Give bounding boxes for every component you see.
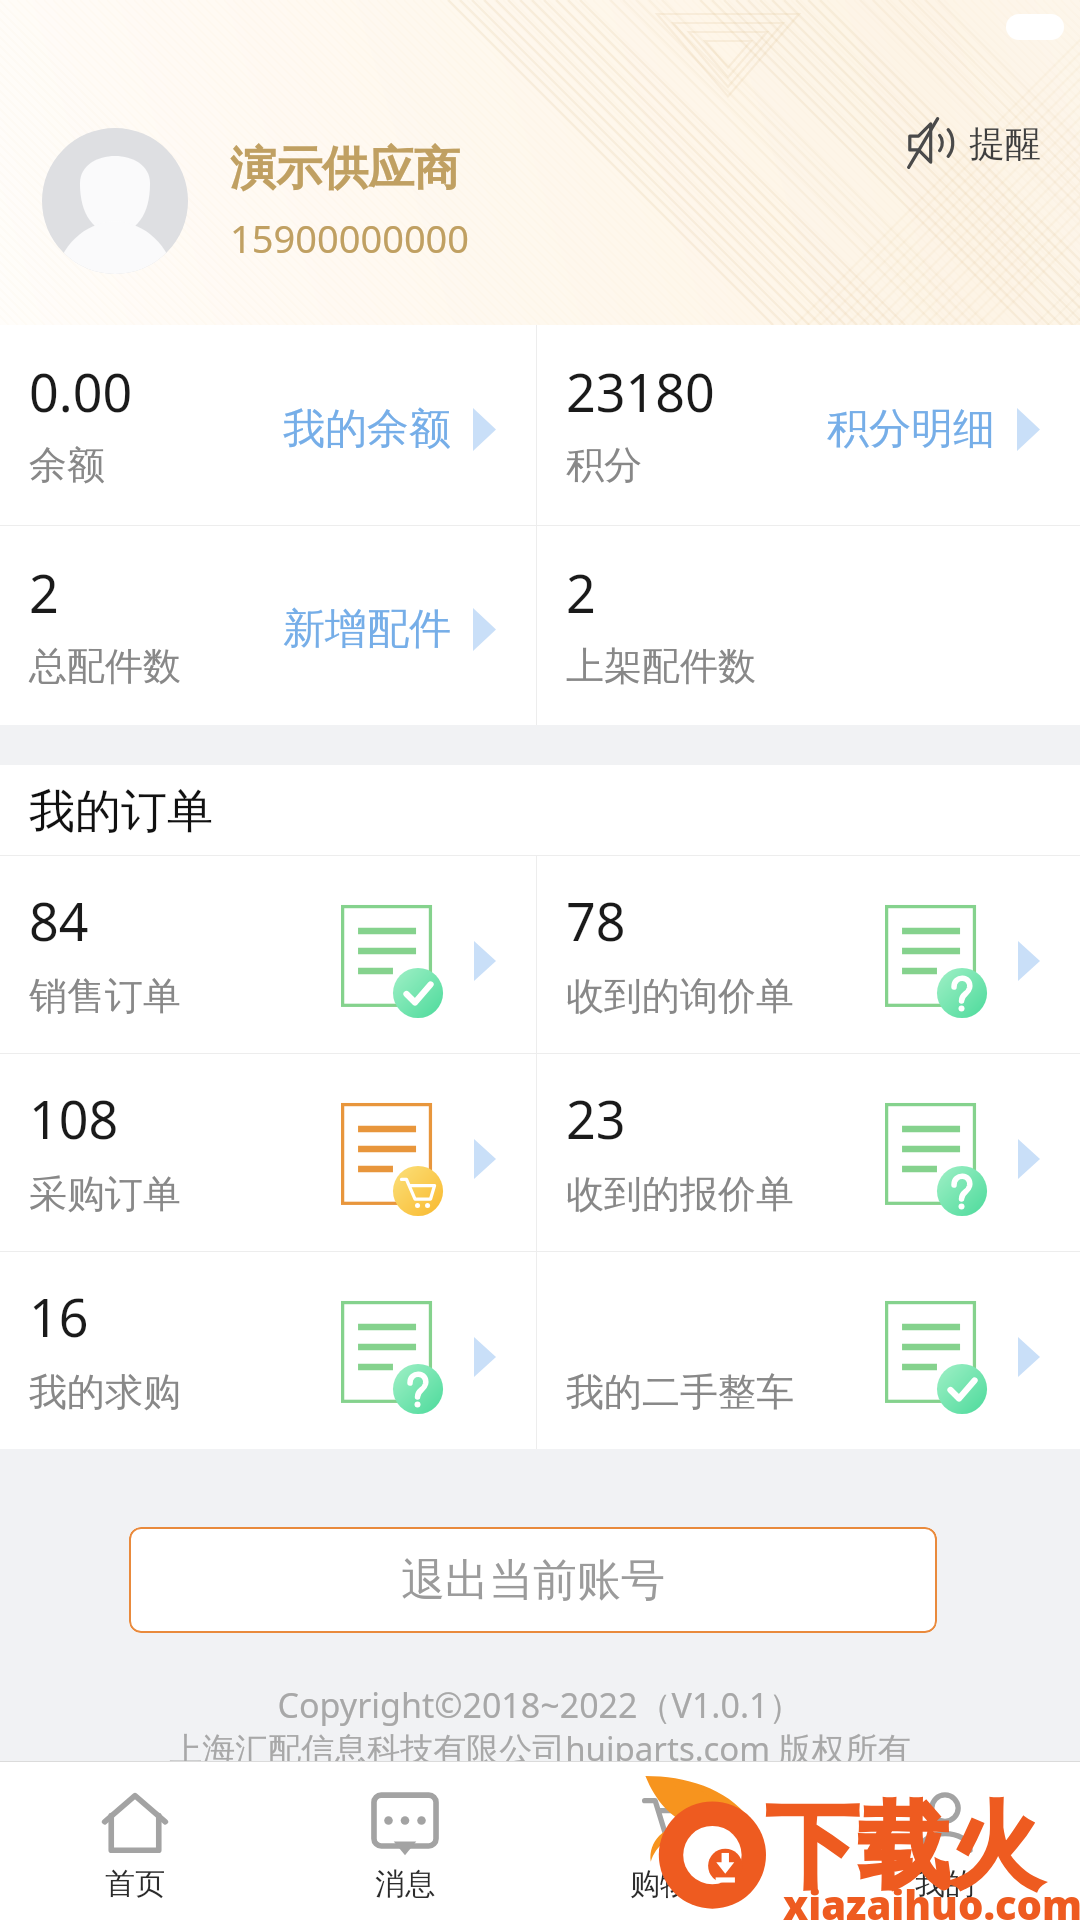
staticText: 0.00	[29, 356, 133, 427]
staticText: 积分	[566, 441, 642, 489]
staticText: 购物车	[630, 1865, 720, 1903]
staticText: 余额	[29, 441, 105, 489]
staticText: 演示供应商	[230, 140, 460, 198]
staticText: 我的订单	[29, 783, 213, 841]
button[interactable]: 108	[0, 1054, 536, 1251]
button[interactable]: 消息	[270, 1762, 540, 1920]
button[interactable]: 23180	[537, 325, 1080, 525]
button[interactable]: 23	[537, 1054, 1080, 1251]
staticText: 84	[29, 885, 89, 956]
button[interactable]: 首页	[0, 1762, 270, 1920]
staticText: 我的二手整车	[566, 1368, 794, 1416]
staticText: 收到的报价单	[566, 1170, 794, 1218]
staticText: 首页	[105, 1865, 165, 1903]
button[interactable]: 演示供应商	[230, 140, 470, 264]
staticText: 我的求购	[29, 1368, 181, 1416]
staticText: 108	[29, 1083, 119, 1154]
staticText: 2	[29, 557, 59, 628]
staticText: 下载火	[766, 1789, 1042, 1905]
staticText: 23	[566, 1083, 626, 1154]
staticText: 退出当前账号	[401, 1553, 665, 1608]
button[interactable]: 2	[0, 526, 536, 725]
button[interactable]: 提醒	[900, 110, 1045, 176]
button[interactable]: 84	[0, 856, 536, 1053]
staticText: 新增配件	[283, 603, 451, 656]
staticText: 总配件数	[29, 642, 181, 690]
staticText: 提醒	[969, 121, 1041, 166]
button[interactable]: 0.00	[0, 325, 536, 525]
staticText: 采购订单	[29, 1170, 181, 1218]
button[interactable]: 退出当前账号	[129, 1527, 937, 1633]
button[interactable]: 购物车	[540, 1762, 810, 1920]
button[interactable]: 我的	[810, 1762, 1080, 1920]
staticText: 15900000000	[230, 212, 470, 264]
staticText: 16	[29, 1281, 89, 1352]
staticText: 收到的询价单	[566, 972, 794, 1020]
staticText: Copyright©2018~2022（V1.0.1）	[0, 1682, 1080, 1728]
staticText: 销售订单	[29, 972, 181, 1020]
staticText: 2	[566, 557, 596, 628]
staticText: 我的余额	[283, 403, 451, 456]
staticText: 我的	[915, 1865, 975, 1903]
button[interactable]: 我的二手整车	[537, 1252, 1080, 1449]
staticText: 78	[566, 885, 626, 956]
staticText: xiazaihuo.com	[783, 1877, 1080, 1920]
button[interactable]: 78	[537, 856, 1080, 1053]
staticText: 上海汇配信息科技有限公司huiparts.com 版权所有	[0, 1726, 1080, 1771]
button[interactable]: 头像	[42, 128, 188, 274]
button[interactable]: 2	[537, 526, 1080, 725]
staticText: 上架配件数	[566, 642, 756, 690]
staticText: 积分明细	[827, 403, 995, 456]
staticText: 消息	[375, 1865, 435, 1903]
staticText: 23180	[566, 356, 715, 427]
button[interactable]: 16	[0, 1252, 536, 1449]
